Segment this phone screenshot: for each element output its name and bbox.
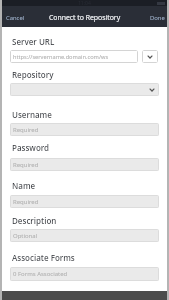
staticText: Name [12, 180, 36, 191]
staticText: Required [13, 161, 39, 169]
button[interactable]: Cancel [6, 14, 25, 22]
button[interactable]: Optional [10, 229, 159, 242]
button[interactable]: Required [10, 195, 159, 208]
staticText: Required [13, 126, 39, 134]
staticText: Server URL [12, 36, 55, 47]
staticText: Optional [13, 232, 38, 240]
button[interactable]: Select repository [10, 83, 159, 96]
staticText: Connect to Repository [49, 13, 121, 22]
button[interactable]: Choose saved server [142, 50, 158, 63]
button[interactable]: https://servername.domain.com/ws [10, 50, 138, 63]
staticText: Description [12, 215, 57, 226]
button[interactable]: Required [10, 158, 159, 171]
staticText: Associate Forms [12, 252, 75, 263]
staticText: Repository [12, 69, 54, 80]
staticText: 0 Forms Associated [13, 270, 68, 278]
button[interactable]: Required [10, 123, 159, 136]
button[interactable]: Done [150, 14, 165, 22]
staticText: Password [12, 142, 50, 153]
staticText: https://servername.domain.com/ws [13, 53, 109, 61]
button[interactable]: 0 Forms Associated [10, 267, 159, 281]
staticText: Username [12, 109, 52, 120]
staticText: Required [13, 198, 39, 206]
